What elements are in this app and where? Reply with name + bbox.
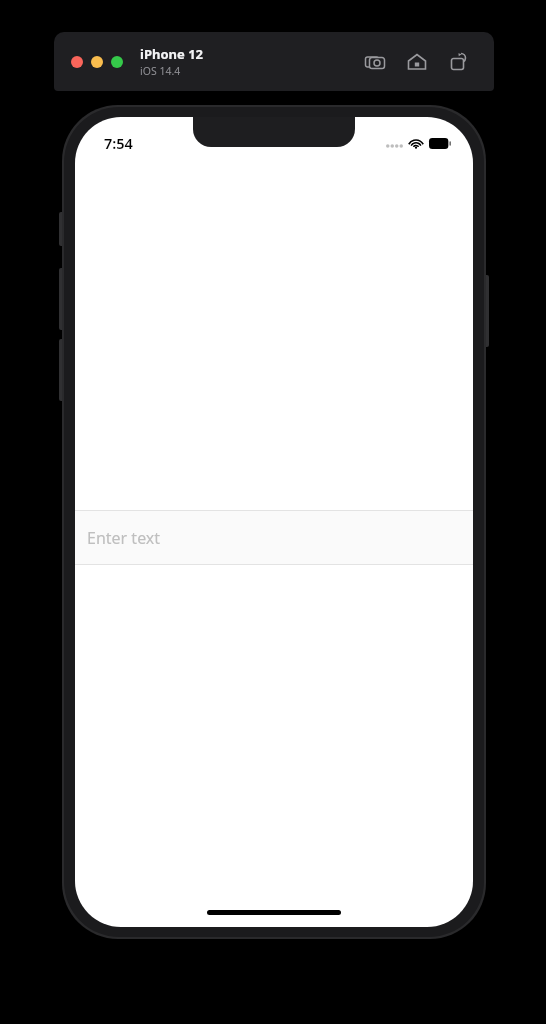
button[interactable]: Screenshot [362, 49, 388, 75]
button[interactable]: Enter text [75, 510, 473, 565]
button[interactable]: Maximize [111, 56, 123, 68]
button[interactable]: Minimize [91, 56, 103, 68]
staticText: 7:54 [104, 133, 133, 153]
button[interactable]: Home [404, 49, 430, 75]
staticText: iPhone 12 [140, 45, 203, 63]
button[interactable]: Rotate [446, 49, 472, 75]
staticText: iOS 14.4 [140, 64, 181, 78]
button[interactable]: Close [71, 56, 83, 68]
staticText: Enter text [87, 527, 161, 549]
